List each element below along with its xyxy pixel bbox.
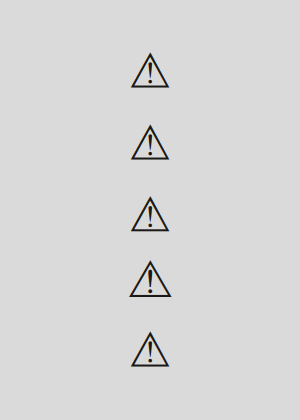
staticText: ⚠ [128,43,171,99]
staticText: ⚠ [128,187,171,243]
staticText: ⚠ [128,323,171,377]
staticText: ⚠ [128,115,171,171]
staticText: ⚠ [128,259,171,307]
